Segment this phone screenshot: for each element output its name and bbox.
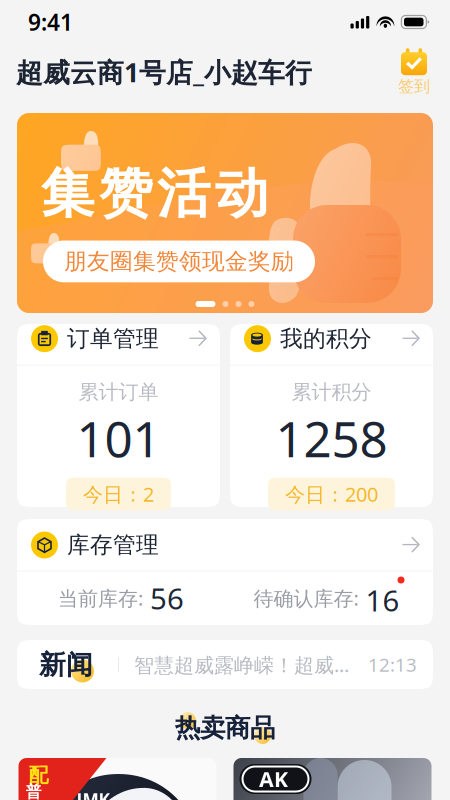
staticText: 12:13 [368,652,417,677]
staticText: 101 [76,405,160,471]
staticText: 超威云商1号店_小赵车行 [16,54,312,90]
staticText: 配 [28,763,48,788]
staticText: JMK [76,788,110,800]
button[interactable]: 我的积分 [230,324,433,507]
staticText: 累计积分 [291,380,371,404]
staticText: 今日：200 [285,481,378,507]
staticText: 智慧超威露峥嵘！超威再登… [134,651,360,678]
staticText: 待确认库存: [253,585,358,611]
button[interactable]: AK头盔商品 [233,758,431,800]
staticText: 16 [365,580,399,619]
staticText: 56 [150,578,184,617]
staticText: 累计订单 [78,380,158,404]
staticText: 普通防雾 [25,782,41,800]
staticText: 签到 [398,77,430,96]
staticText: 9:41 [28,7,73,37]
staticText: 库存管理 [67,531,159,559]
button[interactable]: 库存管理 [17,519,433,625]
button[interactable]: 签到 [392,48,436,96]
staticText: AK [259,765,288,793]
staticText: 订单管理 [67,325,159,353]
button[interactable]: 订单管理 [17,324,220,507]
staticText: 当前库存: [58,585,143,611]
staticText: 1258 [275,405,387,471]
staticText: 热卖商品 [175,712,275,743]
button[interactable]: 新闻 [17,640,433,689]
staticText: 朋友圈集赞领现金奖励 [64,247,294,275]
staticText: 新闻 [39,648,93,681]
button[interactable]: 普通防雾头盔商品 [18,758,216,800]
staticText: 我的积分 [280,325,372,353]
staticText: 集赞活动 [41,161,268,226]
staticText: 今日：2 [83,481,154,507]
